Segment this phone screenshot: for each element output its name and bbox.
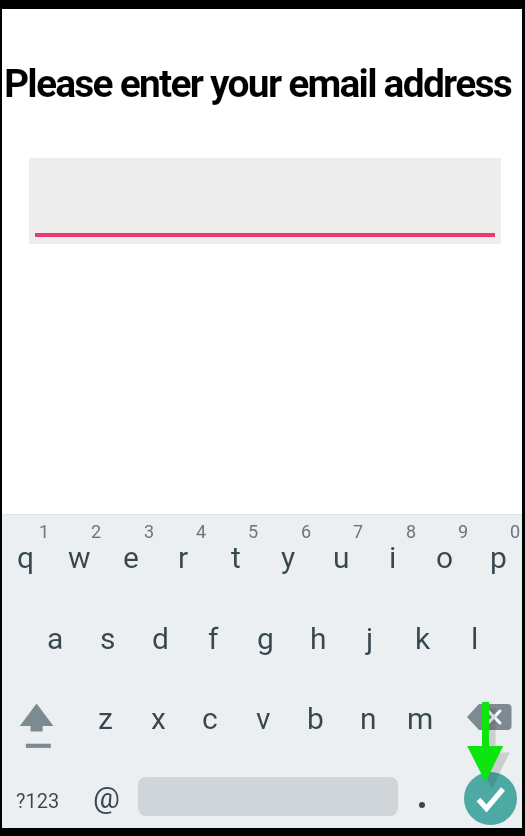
staticText: p	[490, 540, 507, 575]
button[interactable]: j	[344, 600, 396, 676]
button[interactable]: @	[78, 762, 134, 832]
staticText: l	[471, 621, 479, 656]
button[interactable]	[29, 158, 501, 244]
staticText: e	[123, 540, 139, 575]
staticText: a	[47, 621, 64, 656]
button[interactable]: b	[289, 680, 341, 756]
button[interactable]: e	[105, 519, 157, 595]
staticText: d	[152, 621, 169, 656]
button[interactable]: y	[262, 519, 314, 595]
staticText: 4	[196, 521, 207, 542]
staticText: m	[407, 701, 434, 736]
button[interactable]	[460, 680, 522, 756]
staticText: w	[68, 540, 91, 575]
staticText: 7	[353, 521, 364, 542]
button[interactable]: g	[239, 600, 291, 676]
button[interactable]: m	[394, 680, 446, 756]
staticText: ?123	[16, 789, 60, 812]
staticText: u	[333, 540, 350, 575]
button[interactable]: p	[472, 519, 524, 595]
staticText: @	[93, 780, 120, 815]
button[interactable]: h	[292, 600, 344, 676]
button[interactable]: v	[237, 680, 289, 756]
staticText: 9	[458, 521, 469, 542]
staticText: 1	[39, 521, 50, 542]
staticText: q	[17, 540, 35, 575]
staticText: Please enter your email address	[4, 61, 512, 107]
button[interactable]: i	[367, 519, 419, 595]
staticText: i	[389, 540, 397, 575]
button[interactable]: f	[187, 600, 239, 676]
button[interactable]: n	[342, 680, 394, 756]
button[interactable]: w	[53, 519, 105, 595]
staticText: 3	[144, 521, 155, 542]
staticText: 8	[406, 521, 417, 542]
staticText: h	[310, 621, 327, 656]
button[interactable]: z	[79, 680, 131, 756]
staticText: c	[202, 701, 218, 736]
button[interactable]: o	[419, 519, 471, 595]
staticText: v	[256, 701, 271, 736]
staticText: n	[360, 701, 377, 736]
button[interactable]: u	[315, 519, 367, 595]
staticText: s	[100, 621, 116, 656]
staticText: g	[257, 621, 274, 656]
button[interactable]: r	[157, 519, 209, 595]
staticText: y	[281, 540, 296, 575]
staticText: o	[436, 540, 454, 575]
staticText: k	[415, 621, 431, 656]
button[interactable]: x	[132, 680, 184, 756]
button[interactable]: a	[29, 600, 81, 676]
button[interactable]: k	[397, 600, 449, 676]
staticText: r	[178, 540, 189, 575]
button[interactable]: s	[82, 600, 134, 676]
button[interactable]	[464, 772, 517, 825]
staticText: 6	[301, 521, 312, 542]
button[interactable]: ?123	[3, 765, 73, 835]
staticText: j	[366, 621, 374, 656]
button[interactable]: q	[0, 519, 52, 595]
button[interactable]: d	[134, 600, 186, 676]
staticText: 2	[91, 521, 102, 542]
staticText: x	[151, 701, 166, 736]
staticText: t	[231, 540, 241, 575]
staticText: 0	[510, 521, 521, 542]
button[interactable]: l	[449, 600, 501, 676]
staticText: 5	[248, 521, 259, 542]
staticText: f	[208, 621, 219, 656]
button[interactable]: c	[184, 680, 236, 756]
staticText: b	[307, 701, 324, 736]
button[interactable]: t	[210, 519, 262, 595]
staticText: z	[98, 701, 113, 736]
button[interactable]	[2, 680, 76, 756]
button[interactable]	[404, 770, 442, 828]
